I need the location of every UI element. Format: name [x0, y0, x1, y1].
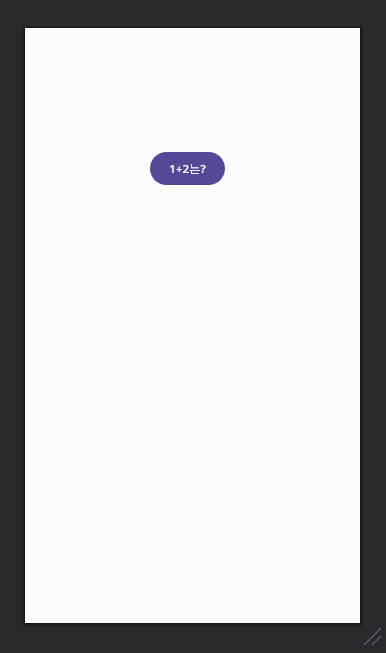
- button[interactable]: 1+2는?: [150, 152, 225, 185]
- staticText: 1+2는?: [169, 161, 206, 177]
